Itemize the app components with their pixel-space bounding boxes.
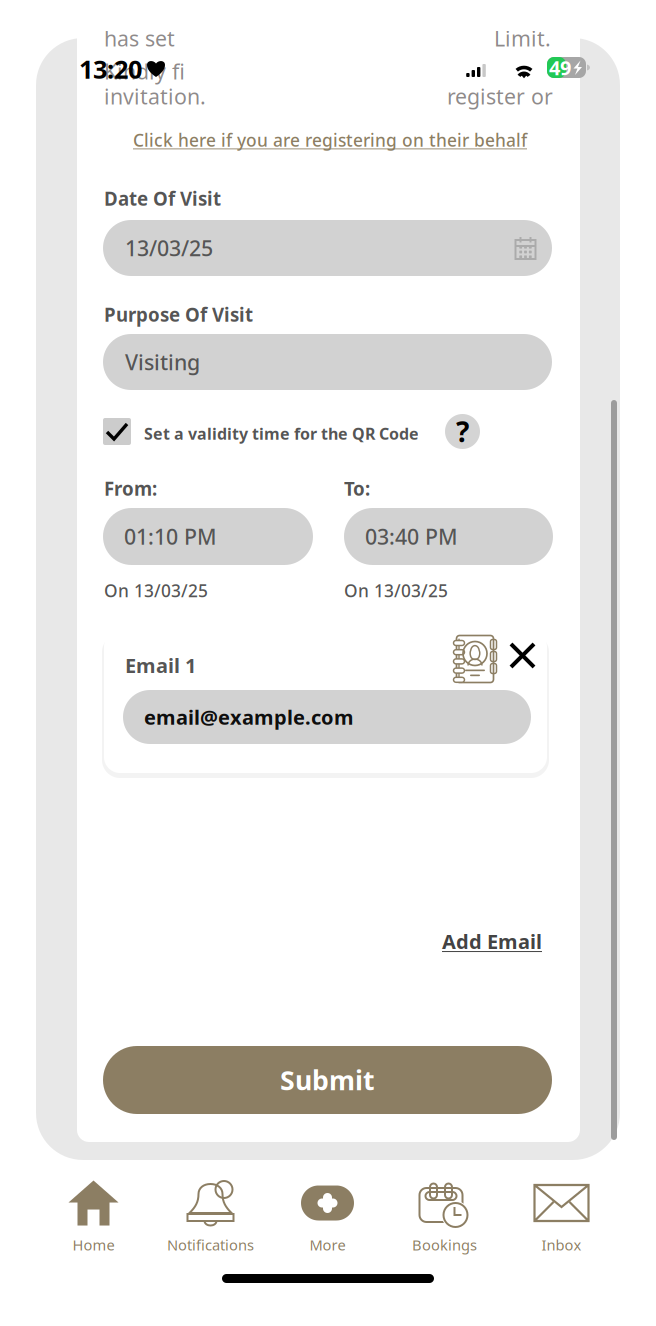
button[interactable]: Submit [103,1046,552,1114]
staticText: Bookings [412,1235,477,1254]
button[interactable]: 13/03/25 [103,220,552,276]
button[interactable]: Set a validity time for the QR Code [103,418,131,445]
button[interactable]: More [269,1178,386,1264]
staticText: Inbox [541,1235,581,1254]
button[interactable]: Click here if you are registering on the… [133,129,533,151]
staticText: Add Email [442,928,542,955]
staticText: More [309,1235,345,1254]
button[interactable]: Add Email [442,928,542,955]
staticText: On 13/03/25 [344,579,448,602]
staticText: Home [72,1235,114,1254]
button[interactable]: Select from contacts [450,633,494,683]
staticText: ? [456,413,469,450]
staticText: 01:10 PM [124,522,217,551]
button[interactable]: 03:40 PM [344,508,553,565]
button[interactable]: Notifications [152,1178,269,1264]
button[interactable]: Help [445,414,480,449]
button[interactable]: Home [35,1178,152,1264]
staticText: 13:20 [79,52,142,86]
staticText: 49 [549,54,571,81]
staticText: Email 1 [125,652,196,679]
staticText: 13/03/25 [125,234,213,262]
staticText: Submit [280,1062,375,1098]
staticText: invitation. [104,82,206,110]
staticText: has set [104,24,175,52]
staticText: From: [104,476,157,501]
staticText: Click here if you are registering on the… [133,128,527,151]
button[interactable]: Bookings [386,1178,503,1264]
staticText: Kindly fi [104,57,185,85]
staticText: Notifications [167,1235,254,1254]
staticText: Visiting [125,348,200,376]
staticText: Purpose Of Visit [104,302,253,327]
staticText: On 13/03/25 [104,579,208,602]
button[interactable]: Visiting [103,334,552,390]
staticText: Date Of Visit [104,186,221,211]
staticText: To: [344,476,370,501]
staticText: Limit. [494,24,551,52]
button[interactable]: Inbox [503,1178,620,1264]
staticText: email@example.com [144,704,354,730]
staticText: Set a validity time for the QR Code [144,423,419,444]
button[interactable]: 01:10 PM [103,508,313,565]
button[interactable]: Remove email [509,642,536,669]
button[interactable]: email@example.com [123,690,531,744]
staticText: register or [447,82,553,110]
staticText: 03:40 PM [365,522,458,551]
